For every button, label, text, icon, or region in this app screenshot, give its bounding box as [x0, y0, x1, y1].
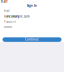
staticText: name@example.com: [4, 15, 29, 18]
staticText: Sign In: [27, 4, 37, 7]
staticText: Password: [4, 20, 16, 24]
staticText: Email: [4, 9, 10, 13]
staticText: 9:41: [1, 0, 8, 3]
staticText: ••••••••: [4, 26, 12, 29]
button[interactable]: Continue: [2, 37, 61, 42]
staticText: Continue: [25, 38, 39, 41]
